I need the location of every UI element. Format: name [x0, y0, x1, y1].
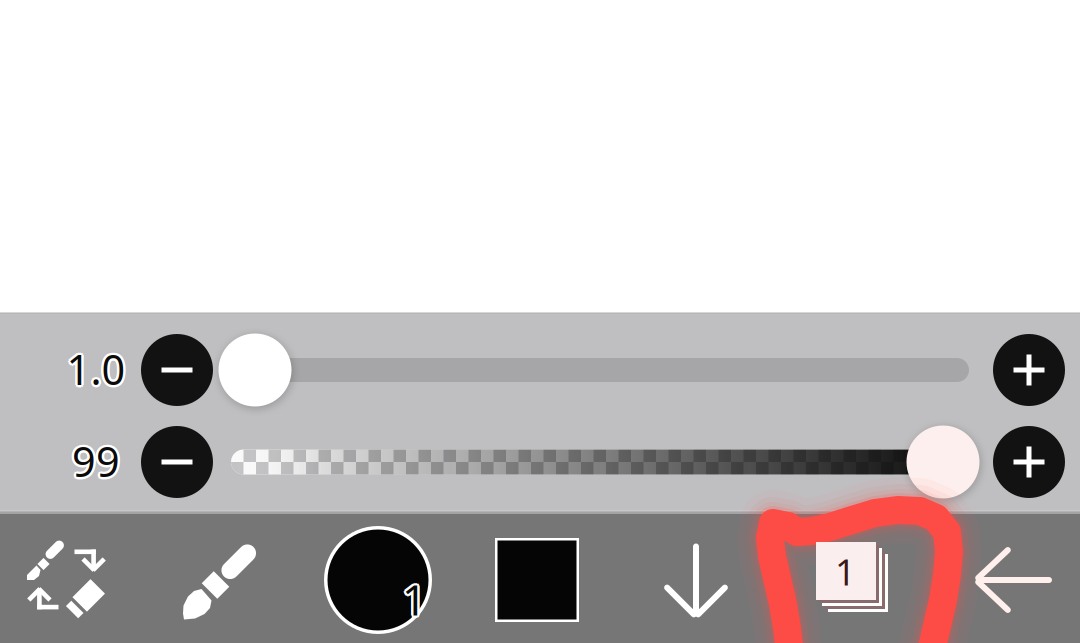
staticText: 99 [74, 435, 122, 490]
staticText: 1 [402, 573, 426, 630]
button[interactable]: Increase [993, 334, 1065, 406]
button[interactable]: Back [974, 545, 1054, 615]
staticText: 1 [404, 571, 428, 627]
staticText: 1.0 [66, 339, 125, 394]
button[interactable]: Color [495, 538, 579, 622]
button[interactable]: Brush [170, 529, 270, 624]
staticText: 1.0 [65, 343, 124, 398]
staticText: 1.0 [65, 340, 124, 395]
button[interactable]: Increase [993, 426, 1065, 498]
staticText: 1.0 [68, 343, 127, 398]
staticText: 1 [404, 572, 428, 629]
staticText: 99 [72, 431, 120, 486]
staticText: 1.0 [64, 342, 123, 396]
staticText: 99 [70, 435, 118, 490]
staticText: 99 [70, 434, 118, 488]
staticText: 1 [400, 569, 424, 626]
staticText: 99 [72, 436, 120, 491]
staticText: 99 [70, 432, 118, 487]
staticText: 99 [74, 432, 122, 487]
staticText: 1.0 [66, 342, 125, 396]
button[interactable]: Decrease [141, 426, 213, 498]
staticText: 99 [74, 434, 122, 488]
button[interactable]: Export [662, 540, 730, 619]
staticText: 1 [402, 568, 426, 625]
staticText: 1.0 [68, 340, 127, 395]
button[interactable]: Decrease [141, 334, 213, 406]
button[interactable]: Swap brush and eraser [15, 534, 115, 619]
staticText: 1 [400, 571, 424, 627]
staticText: 1 [400, 572, 424, 629]
button[interactable]: Brush preview [324, 526, 432, 634]
staticText: 99 [72, 434, 120, 488]
staticText: 1 [835, 548, 856, 595]
staticText: 1 [404, 569, 428, 626]
staticText: 1 [402, 571, 426, 627]
staticText: 1.0 [69, 342, 128, 396]
staticText: 1.0 [66, 344, 125, 399]
button[interactable]: Layers [816, 542, 892, 614]
